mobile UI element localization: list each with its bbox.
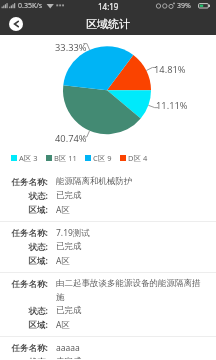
staticText: 任务名称: (10, 278, 48, 290)
button[interactable]: A区 3 (11, 153, 38, 163)
button[interactable]: B区 11 (46, 153, 77, 163)
staticText: C区 9 (93, 153, 112, 163)
staticText: 状态: (10, 190, 48, 202)
staticText: 40.74% (55, 132, 87, 145)
staticText: 区域: (10, 255, 48, 267)
staticText: 由二起事故谈多能源设备的能源隔离措施 (56, 278, 206, 303)
staticText: 39% (177, 1, 191, 11)
staticText: 已完成 (56, 190, 82, 201)
staticText: 状态: (10, 241, 48, 253)
staticText: 任务名称: (10, 176, 48, 188)
staticText: aaaaa (56, 342, 80, 354)
staticText: 33.33% (55, 41, 87, 54)
button[interactable]: 任务名称: (0, 273, 216, 337)
staticText: 11.11% (156, 99, 188, 112)
button[interactable]: C区 9 (85, 153, 112, 163)
staticText: 状态: (10, 305, 48, 317)
staticText: 任务名称: (10, 342, 48, 354)
button[interactable]: D区 4 (120, 153, 148, 163)
staticText: 7.19测试 (56, 227, 90, 239)
staticText: D区 4 (128, 153, 148, 163)
staticText: 已完成 (56, 305, 82, 316)
staticText: 未完成 (56, 356, 82, 359)
staticText: B区 11 (54, 153, 77, 163)
staticText: 区域: (10, 204, 48, 216)
staticText: A区 3 (19, 153, 38, 163)
staticText: 0.35K/s (18, 1, 43, 11)
button[interactable]: 任务名称: (0, 222, 216, 273)
staticText: 能源隔离和机械防护 (56, 176, 133, 187)
staticText: 14:19 (98, 1, 119, 12)
button[interactable]: Back (9, 17, 23, 31)
staticText: A区 (56, 255, 70, 267)
staticText: 14.81% (154, 63, 186, 76)
staticText: 区域统计 (86, 17, 130, 31)
staticText: 区域: (10, 319, 48, 331)
staticText: 状态: (10, 356, 48, 359)
staticText: 任务名称: (10, 227, 48, 239)
staticText: 已完成 (56, 241, 82, 252)
staticText: A区 (56, 204, 70, 216)
button[interactable]: 任务名称: (0, 171, 216, 222)
button[interactable]: 任务名称: (0, 337, 216, 360)
staticText: A区 (56, 319, 70, 331)
